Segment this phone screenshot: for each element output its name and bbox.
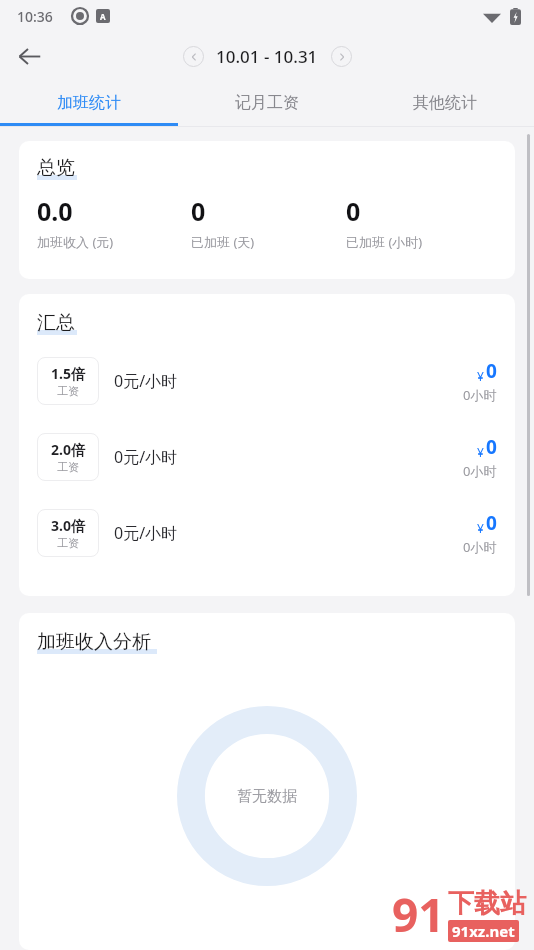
staticText: 10.01 - 10.31 bbox=[216, 45, 318, 68]
button[interactable]: Previous period bbox=[183, 46, 204, 67]
staticText: 已加班 (天) bbox=[191, 233, 255, 251]
staticText: 0 bbox=[191, 194, 206, 228]
button[interactable]: 1.5倍 bbox=[37, 357, 497, 405]
staticText: ¥ bbox=[477, 520, 484, 536]
staticText: 0 bbox=[486, 434, 497, 460]
button[interactable]: 总览 bbox=[19, 141, 515, 279]
staticText: 加班收入分析 bbox=[37, 630, 151, 654]
staticText: 已加班 (小时) bbox=[346, 233, 423, 251]
staticText: 0元/小时 bbox=[114, 522, 178, 544]
staticText: 0小时 bbox=[463, 462, 497, 480]
staticText: 0小时 bbox=[463, 386, 497, 404]
staticText: 0元/小时 bbox=[114, 370, 178, 392]
staticText: 工资 bbox=[57, 536, 79, 550]
staticText: 91 bbox=[392, 883, 445, 946]
staticText: ¥ bbox=[477, 444, 484, 460]
staticText: 下载站 bbox=[448, 887, 526, 920]
button[interactable]: 加班统计 bbox=[0, 80, 178, 126]
staticText: 工资 bbox=[57, 460, 79, 474]
staticText: 0.0 bbox=[37, 194, 73, 228]
staticText: 3.0倍 bbox=[51, 516, 85, 535]
button[interactable]: 3.0倍 bbox=[37, 509, 497, 557]
staticText: 加班收入 (元) bbox=[37, 233, 114, 251]
button[interactable]: Back bbox=[6, 33, 52, 79]
staticText: A bbox=[100, 11, 106, 22]
staticText: 2.0倍 bbox=[51, 440, 85, 459]
staticText: 总览 bbox=[37, 156, 75, 180]
staticText: 汇总 bbox=[37, 311, 75, 335]
staticText: 0 bbox=[486, 358, 497, 384]
staticText: 工资 bbox=[57, 384, 79, 398]
staticText: 91xz.net bbox=[452, 921, 515, 941]
staticText: 加班统计 bbox=[57, 93, 121, 113]
staticText: 0元/小时 bbox=[114, 446, 178, 468]
button[interactable]: 2.0倍 bbox=[37, 433, 497, 481]
button[interactable]: Next period bbox=[331, 46, 352, 67]
staticText: 记月工资 bbox=[235, 93, 299, 113]
button[interactable]: 记月工资 bbox=[178, 80, 356, 126]
staticText: 1.5倍 bbox=[51, 364, 85, 383]
staticText: 0 bbox=[486, 510, 497, 536]
staticText: 10:36 bbox=[17, 7, 53, 26]
staticText: ¥ bbox=[477, 368, 484, 384]
staticText: 0 bbox=[346, 194, 361, 228]
staticText: 0小时 bbox=[463, 538, 497, 556]
staticText: 其他统计 bbox=[413, 93, 477, 113]
staticText: 暂无数据 bbox=[237, 787, 297, 806]
button[interactable]: 其他统计 bbox=[356, 80, 534, 126]
